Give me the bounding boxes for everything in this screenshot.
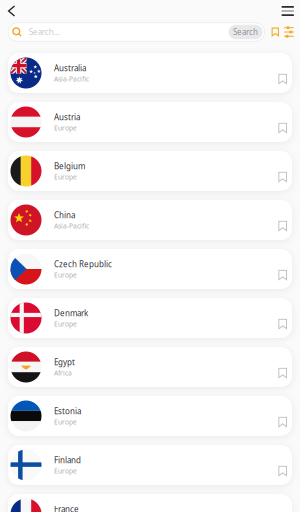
button[interactable]: Search bbox=[229, 25, 263, 39]
staticText: Austria bbox=[54, 112, 80, 122]
staticText: Europe bbox=[54, 123, 77, 132]
staticText: Asia-Pacific bbox=[54, 221, 89, 230]
staticText: Australia bbox=[54, 63, 86, 73]
staticText: Egypt bbox=[54, 357, 75, 367]
staticText: China bbox=[54, 210, 75, 220]
button[interactable]: Menu bbox=[275, 1, 300, 21]
button[interactable]: Bookmarks bbox=[269, 25, 282, 39]
staticText: Belgium bbox=[54, 161, 85, 171]
button[interactable]: Finland bbox=[0, 445, 300, 485]
button[interactable]: Austria bbox=[0, 102, 300, 142]
button[interactable]: Czech Republic bbox=[0, 249, 300, 289]
button[interactable]: Estonia bbox=[0, 396, 300, 436]
staticText: Denmark bbox=[54, 308, 88, 318]
staticText: France bbox=[54, 504, 79, 512]
button[interactable]: Egypt bbox=[0, 347, 300, 387]
button[interactable]: France bbox=[0, 494, 300, 512]
staticText: Europe bbox=[54, 466, 77, 475]
staticText: Estonia bbox=[54, 406, 81, 416]
button[interactable]: Belgium bbox=[0, 151, 300, 191]
staticText: Czech Republic bbox=[54, 259, 112, 269]
staticText: Europe bbox=[54, 270, 77, 279]
staticText: Asia-Pacific bbox=[54, 74, 89, 83]
staticText: Search... bbox=[29, 27, 60, 37]
staticText: Africa bbox=[54, 368, 72, 377]
button[interactable]: China bbox=[0, 200, 300, 240]
button[interactable]: Back bbox=[0, 0, 22, 22]
staticText: Europe bbox=[54, 172, 77, 181]
staticText: Finland bbox=[54, 455, 81, 465]
staticText: Search bbox=[233, 27, 258, 37]
button[interactable]: Filter bbox=[282, 24, 296, 40]
staticText: Europe bbox=[54, 319, 77, 328]
button[interactable]: Denmark bbox=[0, 298, 300, 338]
staticText: Europe bbox=[54, 417, 77, 426]
button[interactable]: Australia bbox=[0, 53, 300, 93]
